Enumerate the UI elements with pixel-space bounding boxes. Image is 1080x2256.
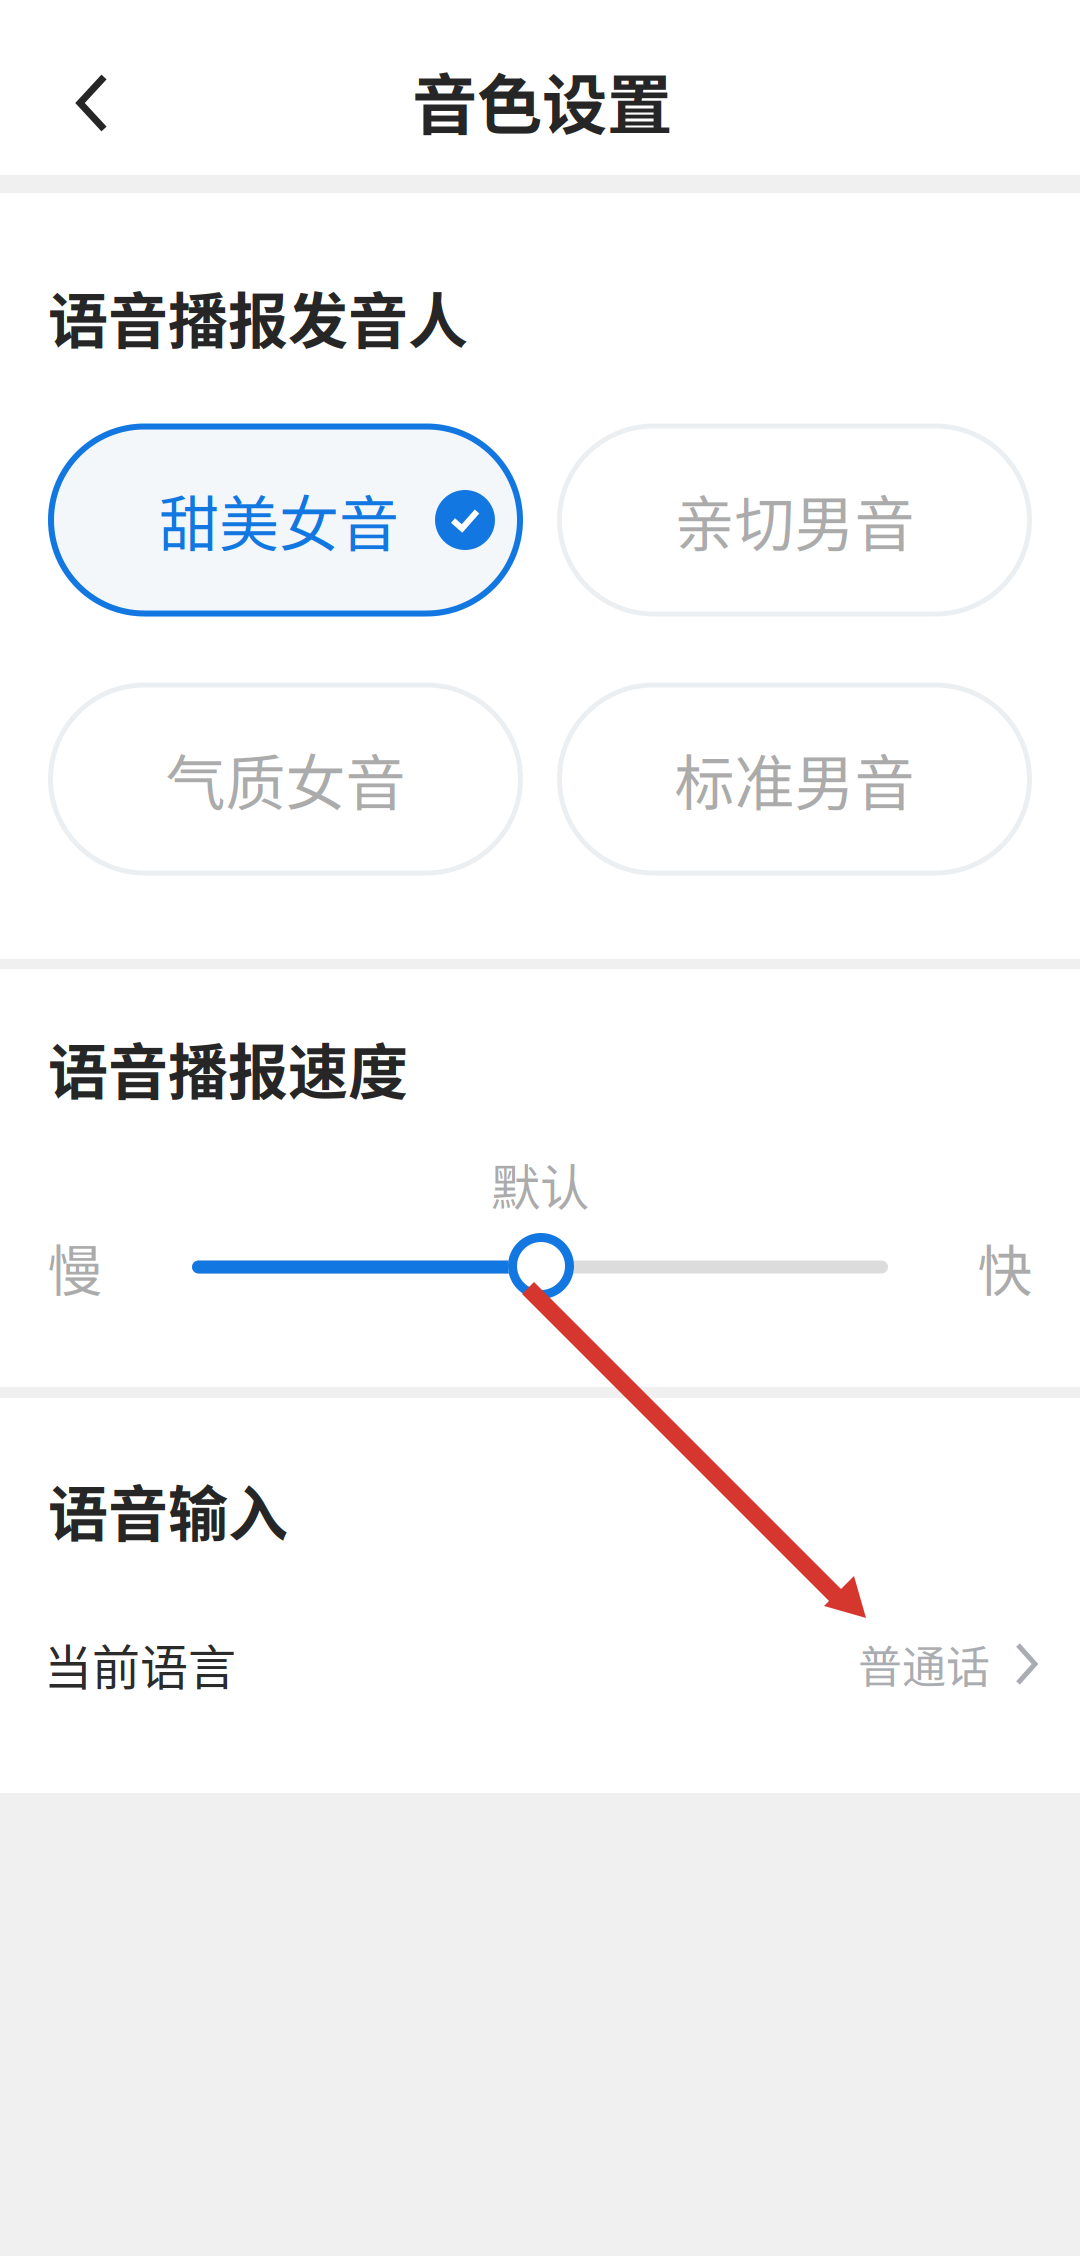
button[interactable]: 返回 bbox=[22, 43, 162, 163]
staticText: 语音输入 bbox=[48, 1467, 288, 1553]
staticText: 亲切男音 bbox=[674, 477, 914, 563]
button[interactable]: 亲切男音 bbox=[557, 423, 1032, 616]
staticText: 语音播报发音人 bbox=[48, 274, 468, 360]
button[interactable]: 当前语言 bbox=[0, 1609, 1080, 1719]
staticText: 语音播报速度 bbox=[48, 1025, 408, 1111]
staticText: 气质女音 bbox=[165, 736, 405, 822]
button[interactable]: 气质女音 bbox=[48, 682, 523, 875]
staticText: 甜美女音 bbox=[159, 477, 399, 563]
staticText: 慢 bbox=[47, 1227, 102, 1307]
staticText: 快 bbox=[977, 1227, 1032, 1307]
button[interactable]: 甜美女音 bbox=[48, 423, 523, 616]
staticText: 普通话 bbox=[858, 1632, 990, 1696]
button[interactable]: 标准男音 bbox=[557, 682, 1032, 875]
staticText: 音色设置 bbox=[412, 53, 672, 147]
staticText: 标准男音 bbox=[674, 736, 914, 822]
staticText: 默认 bbox=[491, 1148, 589, 1220]
staticText: 当前语言 bbox=[44, 1629, 236, 1699]
